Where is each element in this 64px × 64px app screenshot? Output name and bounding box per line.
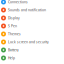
button[interactable]: Sounds and notification xyxy=(0,6,64,14)
staticText: Lock screen and security xyxy=(8,40,49,44)
staticText: Battery xyxy=(8,48,19,52)
staticText: Help xyxy=(8,56,15,60)
staticText: Themes xyxy=(8,32,21,36)
staticText: Display xyxy=(8,16,20,20)
button[interactable]: Lock screen and security xyxy=(0,38,64,46)
button[interactable]: Display xyxy=(0,14,64,22)
button[interactable]: Battery xyxy=(0,46,64,54)
button[interactable]: Help xyxy=(0,54,64,62)
staticText: S Pen xyxy=(8,24,17,28)
staticText: Sounds and notification xyxy=(8,8,46,12)
button[interactable]: S Pen xyxy=(0,22,64,30)
button[interactable]: Connections xyxy=(0,0,64,6)
button[interactable]: Themes xyxy=(0,30,64,38)
staticText: Connections xyxy=(8,0,28,4)
